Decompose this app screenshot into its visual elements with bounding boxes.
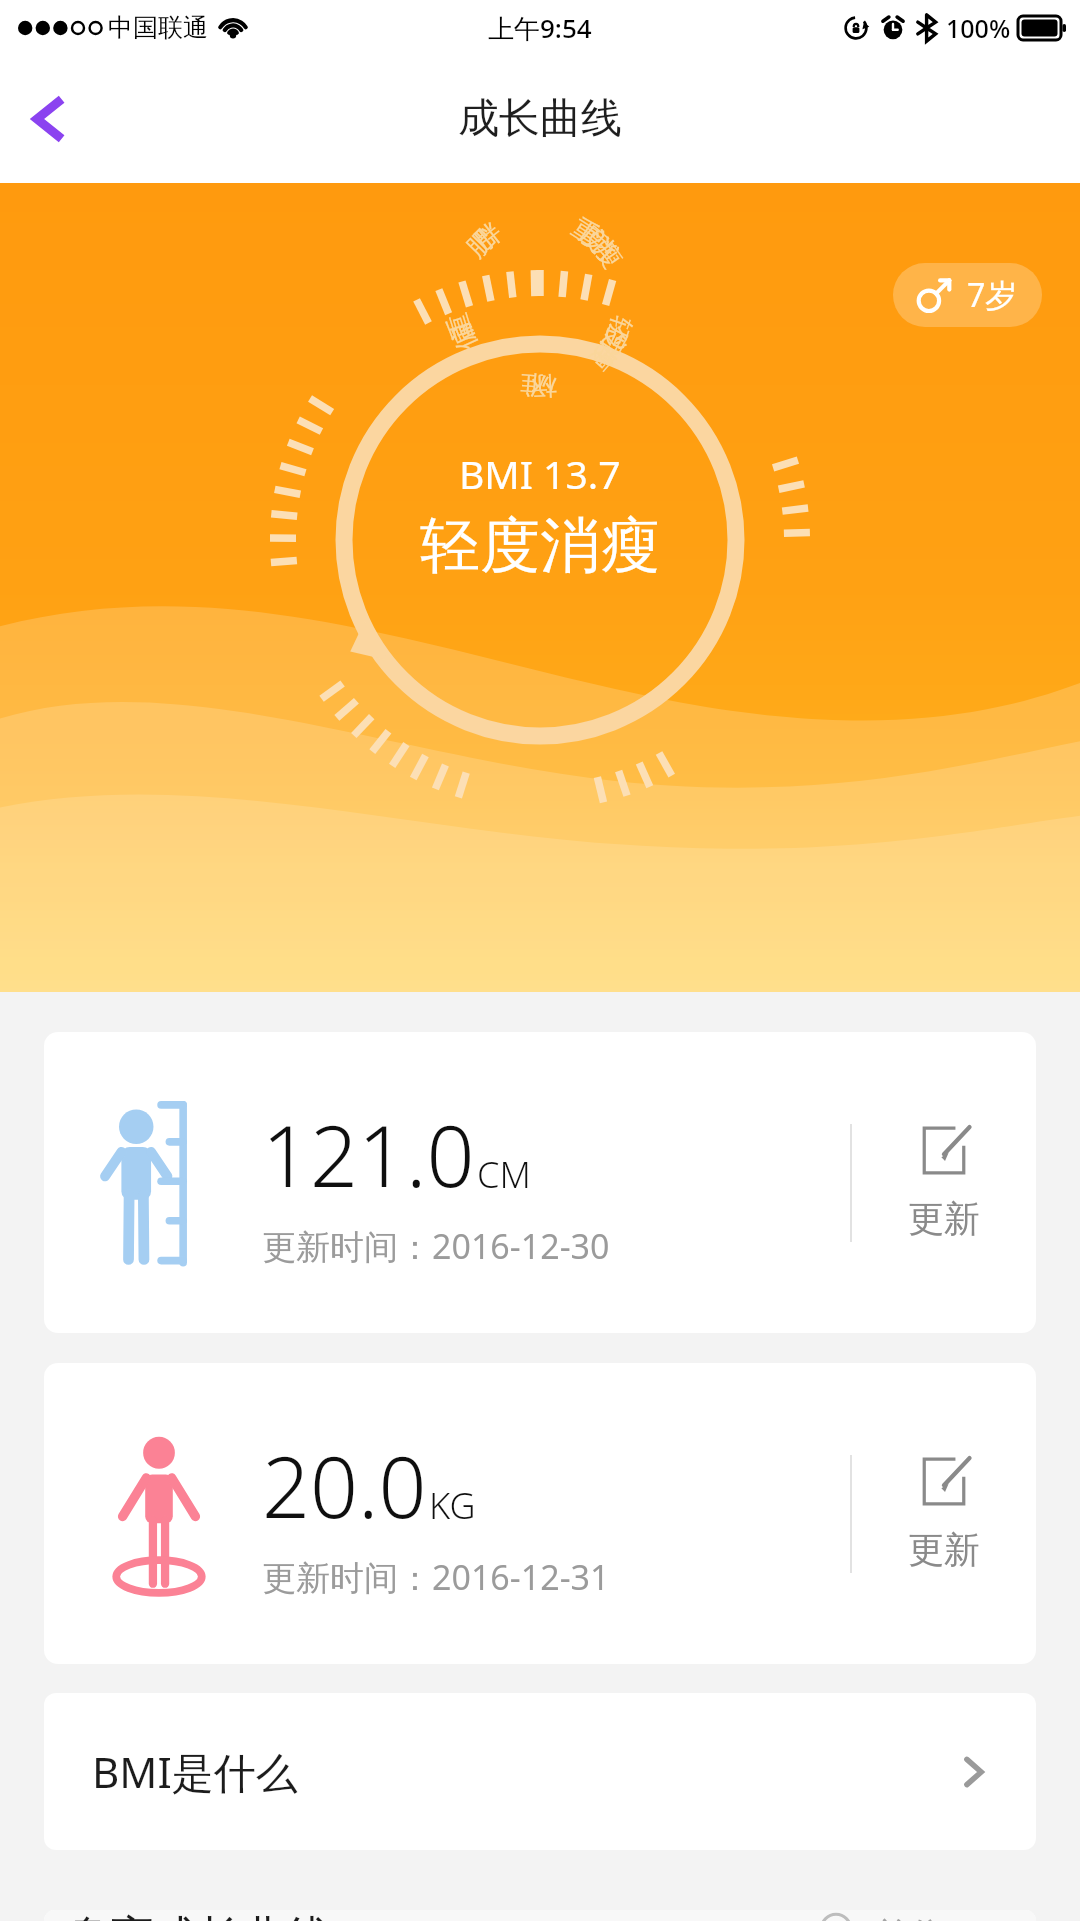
button[interactable]: BMI是什么 [44,1693,1036,1850]
staticText: 身高成长曲线 [66,1910,330,1921]
button[interactable]: 更新 [852,1032,1036,1333]
button[interactable]: 7岁 [893,263,1042,327]
staticText: BMI 13.7 [459,447,621,500]
staticText: 准 [519,372,547,402]
button[interactable]: 20.0 [44,1363,1036,1664]
button[interactable]: 121.0 [44,1032,1036,1333]
staticText: 度 [599,322,635,358]
staticText: 瘦 [586,339,624,377]
staticText: 消 [584,225,622,263]
staticText: 胖 [468,216,506,254]
staticText: 更新 [908,1527,980,1572]
staticText: 成长曲线 [458,93,622,145]
staticText: 20.0 [262,1428,427,1542]
staticText: 上午9:54 [488,10,592,46]
staticText: 肥 [460,223,498,261]
staticText: 100% [946,11,1011,45]
staticText: 轻 [603,313,638,347]
staticText: 标 [530,373,558,403]
staticText: BMI是什么 [92,1743,298,1800]
button[interactable]: 更新 [852,1363,1036,1664]
staticText: 重 [568,211,605,249]
staticText: 更新时间：2016-12-30 [262,1223,610,1269]
staticText: 轻度消瘦 [420,508,660,584]
staticText: KG [429,1481,476,1530]
staticText: 121.0 [262,1097,475,1211]
staticText: 偏 [444,320,480,356]
staticText: 中国联通 [108,12,208,43]
staticText: CM [477,1150,531,1199]
staticText: 重 [441,310,475,344]
staticText: 度 [576,218,614,256]
staticText: 瘦 [591,234,629,272]
staticText: 消 [592,331,630,369]
staticText: 7岁 [967,273,1018,317]
staticText: 单位:CM [874,1910,1012,1921]
button[interactable]: Back [0,71,96,167]
staticText: 更新 [908,1196,980,1241]
staticText: 更新时间：2016-12-31 [262,1554,610,1600]
